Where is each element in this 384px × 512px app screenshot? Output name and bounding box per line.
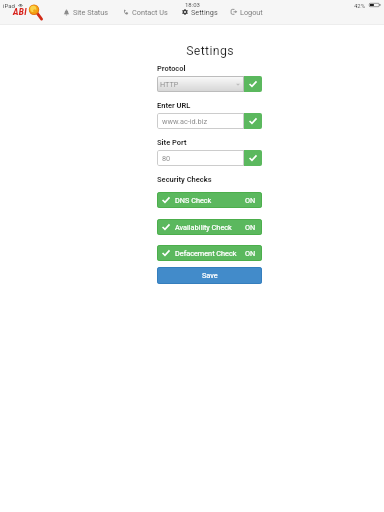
staticText: ON — [245, 196, 256, 205]
staticText: Site Port — [157, 138, 187, 147]
staticText: Contact Us — [132, 8, 168, 17]
staticText: Availability Check — [175, 223, 232, 232]
button[interactable]: HTTP — [157, 76, 244, 92]
button[interactable]: Settings — [181, 4, 219, 20]
staticText: iPad — [3, 2, 15, 9]
staticText: HTTP — [160, 80, 179, 89]
button[interactable]: Site Status — [62, 4, 110, 20]
button[interactable]: Logout — [230, 4, 264, 20]
button[interactable]: Defacement Check — [157, 245, 262, 261]
staticText: ON — [245, 249, 256, 258]
staticText: 18:03 — [185, 1, 200, 8]
staticText: Enter URL — [157, 101, 191, 110]
staticText: 42% — [354, 2, 366, 9]
staticText: ON — [245, 223, 256, 232]
staticText: www.ac-id.biz — [162, 117, 208, 126]
staticText: Protocol — [157, 64, 186, 73]
staticText: Settings — [191, 8, 218, 17]
staticText: Settings — [186, 44, 234, 58]
staticText: Site Status — [73, 8, 109, 17]
button[interactable]: Confirm — [244, 113, 262, 129]
button[interactable]: Availability Check — [157, 219, 262, 235]
button[interactable]: 80 — [157, 150, 244, 166]
staticText: Save — [202, 271, 218, 280]
staticText: 80 — [162, 154, 171, 163]
button[interactable]: www.ac-id.biz — [157, 113, 244, 129]
staticText: Defacement Check — [175, 249, 237, 258]
button[interactable]: Confirm — [244, 76, 262, 92]
staticText: Security Checks — [157, 175, 212, 184]
staticText: Logout — [240, 8, 263, 17]
staticText: ABI — [13, 7, 28, 17]
staticText: DNS Check — [175, 196, 212, 205]
button[interactable]: Save — [157, 267, 262, 284]
button[interactable]: Contact Us — [122, 4, 169, 20]
button[interactable]: DNS Check — [157, 192, 262, 208]
button[interactable]: Confirm — [244, 150, 262, 166]
